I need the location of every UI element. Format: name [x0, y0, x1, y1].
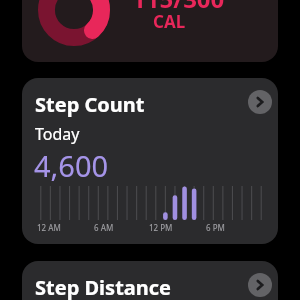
- staticText: Step Distance: [35, 274, 172, 300]
- staticText: 4,600: [34, 146, 109, 185]
- staticText: Step Count: [35, 91, 145, 118]
- button[interactable]: Open Step Count details: [248, 90, 272, 114]
- button[interactable]: 115/300: [22, 0, 278, 62]
- staticText: CAL: [153, 10, 186, 33]
- staticText: 12 PM: [149, 222, 173, 233]
- button[interactable]: Step Distance: [22, 261, 278, 300]
- button[interactable]: Step Count: [22, 78, 278, 244]
- staticText: Today: [35, 123, 80, 145]
- staticText: 12 AM: [37, 222, 61, 233]
- staticText: 6 PM: [206, 222, 225, 233]
- button[interactable]: Open Step Distance details: [248, 273, 272, 297]
- staticText: 6 AM: [94, 222, 114, 233]
- staticText: 115/300: [132, 0, 225, 15]
